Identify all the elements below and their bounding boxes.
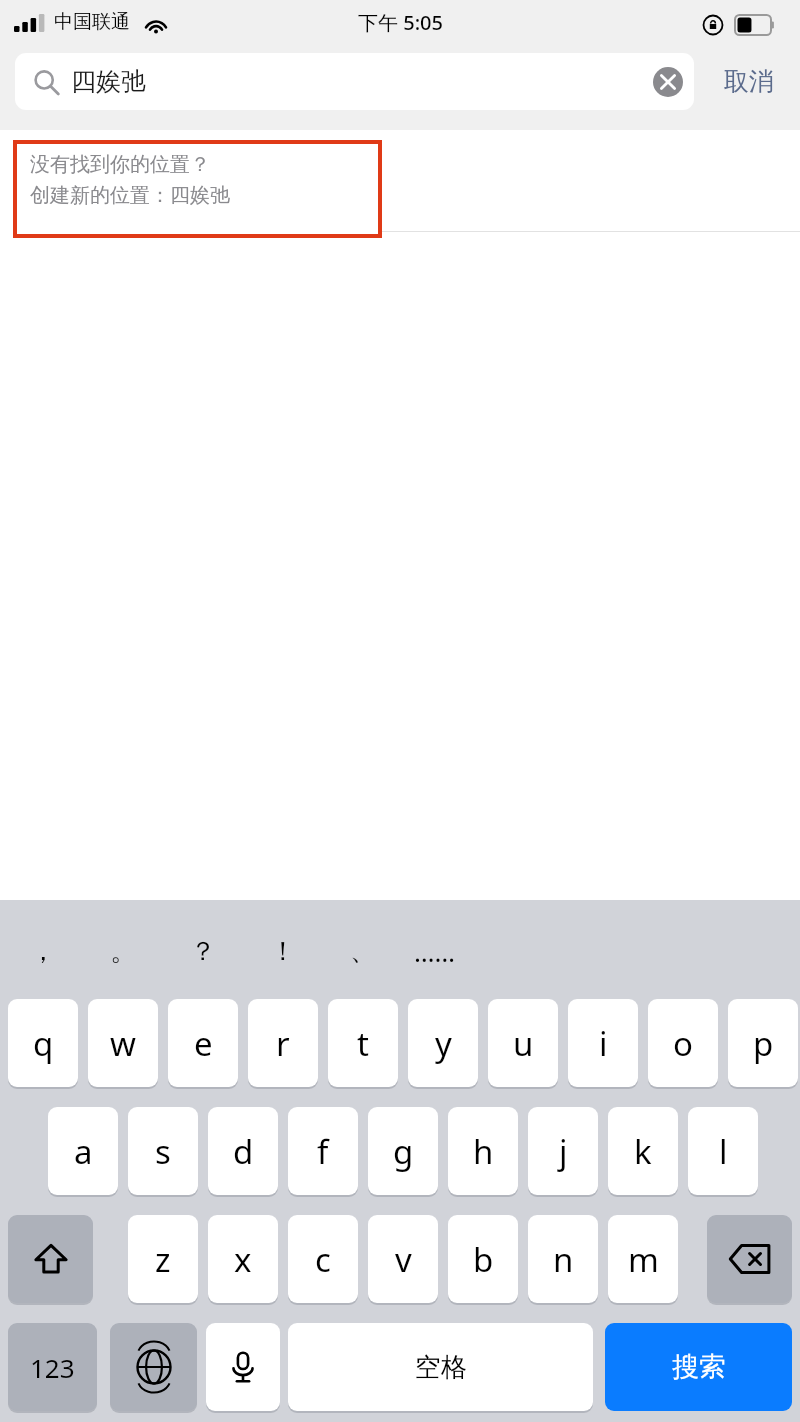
staticText: w [110, 1021, 136, 1066]
staticText: m [628, 1237, 659, 1282]
staticText: r [276, 1021, 290, 1066]
button[interactable]: 取消 [705, 53, 793, 110]
staticText: ？ [190, 935, 216, 968]
button[interactable]: z [128, 1215, 198, 1303]
button[interactable]: Clear text [646, 60, 690, 104]
staticText: d [233, 1129, 254, 1174]
button[interactable]: Switch keyboard [110, 1323, 197, 1411]
staticText: 下午 5:05 [358, 9, 443, 36]
button[interactable]: r [248, 999, 318, 1087]
button[interactable]: Numbers [8, 1323, 97, 1411]
button[interactable]: Voice input [206, 1323, 280, 1411]
staticText: j [559, 1129, 568, 1174]
button[interactable]: 搜索 [605, 1323, 792, 1411]
button[interactable]: h [448, 1107, 518, 1195]
button[interactable]: o [648, 999, 718, 1087]
button[interactable]: i [568, 999, 638, 1087]
staticText: 123 [30, 1350, 75, 1385]
button[interactable]: v [368, 1215, 438, 1303]
staticText: e [194, 1021, 213, 1066]
staticText: x [234, 1237, 252, 1282]
button[interactable]: 空格 [288, 1323, 593, 1411]
staticText: 搜索 [672, 1350, 726, 1384]
button[interactable]: u [488, 999, 558, 1087]
staticText: u [513, 1021, 534, 1066]
button[interactable]: 。 [88, 930, 158, 972]
staticText: i [599, 1021, 608, 1066]
staticText: 中国联通 [54, 10, 130, 34]
button[interactable]: x [208, 1215, 278, 1303]
staticText: l [719, 1129, 728, 1174]
staticText: g [393, 1129, 414, 1174]
staticText: b [473, 1237, 494, 1282]
staticText: k [634, 1129, 652, 1174]
staticText: 创建新的位置：四娭弛 [30, 183, 230, 208]
button[interactable]: 四娭弛 [15, 53, 694, 110]
staticText: t [357, 1021, 369, 1066]
staticText: f [317, 1129, 329, 1174]
button[interactable]: t [328, 999, 398, 1087]
button[interactable]: c [288, 1215, 358, 1303]
button[interactable]: d [208, 1107, 278, 1195]
staticText: 。 [110, 935, 136, 968]
staticText: ！ [270, 935, 296, 968]
staticText: 、 [350, 935, 376, 968]
staticText: v [395, 1237, 412, 1282]
staticText: …… [414, 934, 456, 969]
staticText: 没有找到你的位置？ [30, 152, 210, 177]
button[interactable]: l [688, 1107, 758, 1195]
button[interactable]: m [608, 1215, 678, 1303]
button[interactable]: g [368, 1107, 438, 1195]
button[interactable]: 没有找到你的位置？ [13, 140, 382, 238]
staticText: z [155, 1237, 171, 1282]
button[interactable]: ， [8, 930, 78, 972]
button[interactable]: b [448, 1215, 518, 1303]
staticText: ， [30, 935, 56, 968]
button[interactable]: j [528, 1107, 598, 1195]
button[interactable]: a [48, 1107, 118, 1195]
button[interactable]: w [88, 999, 158, 1087]
button[interactable]: k [608, 1107, 678, 1195]
staticText: p [753, 1021, 774, 1066]
button[interactable]: n [528, 1215, 598, 1303]
button[interactable]: Shift [8, 1215, 93, 1303]
button[interactable]: ？ [168, 930, 238, 972]
staticText: n [553, 1237, 574, 1282]
staticText: 空格 [415, 1351, 467, 1384]
button[interactable]: …… [400, 930, 470, 972]
staticText: s [155, 1129, 171, 1174]
staticText: h [473, 1129, 494, 1174]
button[interactable]: s [128, 1107, 198, 1195]
button[interactable]: Backspace [707, 1215, 792, 1303]
button[interactable]: y [408, 999, 478, 1087]
staticText: a [74, 1129, 93, 1174]
staticText: o [673, 1021, 693, 1066]
staticText: q [33, 1021, 54, 1066]
button[interactable]: e [168, 999, 238, 1087]
button[interactable]: ！ [248, 930, 318, 972]
staticText: 取消 [724, 66, 774, 97]
button[interactable]: 、 [328, 930, 398, 972]
button[interactable]: q [8, 999, 78, 1087]
staticText: 四娭弛 [71, 66, 146, 97]
button[interactable]: p [728, 999, 798, 1087]
staticText: y [435, 1021, 452, 1066]
staticText: c [315, 1237, 331, 1282]
button[interactable]: f [288, 1107, 358, 1195]
